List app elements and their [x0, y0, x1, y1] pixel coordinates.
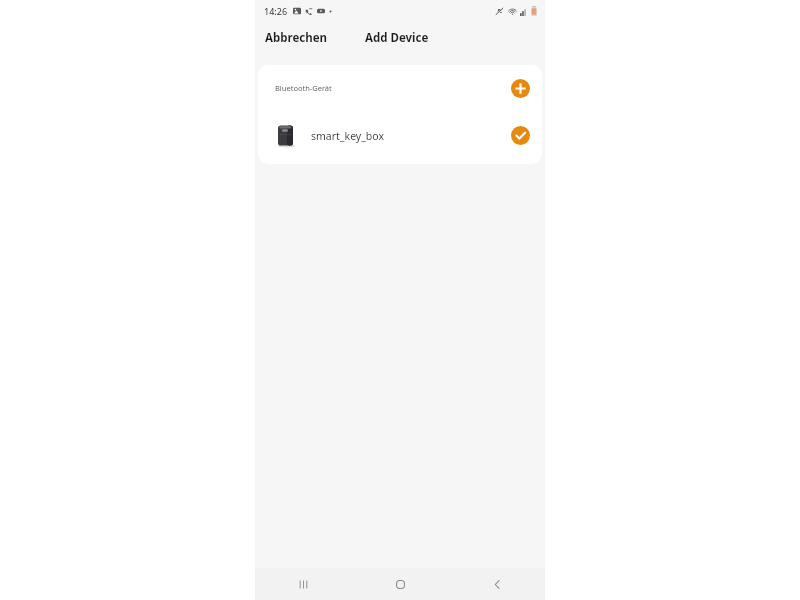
button[interactable]: Abbrechen [258, 26, 335, 50]
staticText: Add Device [365, 30, 429, 46]
staticText: Bluetooth-Gerät [275, 83, 332, 93]
button[interactable]: smart_key_box [258, 111, 542, 160]
staticText: 14:26 [264, 5, 288, 17]
button[interactable]: Home [378, 568, 422, 600]
staticText: Abbrechen [265, 30, 328, 46]
button[interactable]: Add Bluetooth device [511, 79, 530, 98]
button[interactable]: Back [475, 568, 519, 600]
staticText: smart_key_box [311, 129, 385, 143]
button[interactable]: Recent apps [281, 568, 325, 600]
button[interactable]: Device paired [511, 126, 530, 145]
